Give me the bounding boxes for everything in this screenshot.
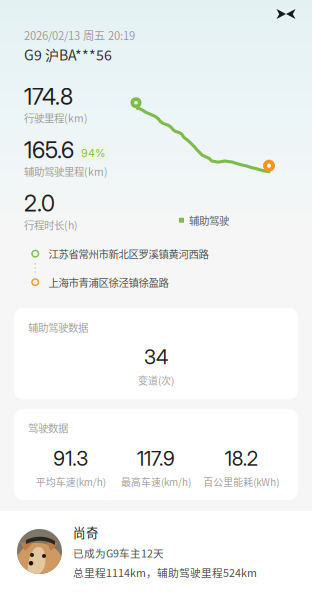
- staticText: 变道(次): [138, 373, 174, 387]
- button[interactable]: 尚奇: [0, 511, 312, 592]
- staticText: 辅助驾驶数据: [28, 320, 88, 335]
- staticText: 尚奇: [73, 523, 99, 541]
- staticText: 总里程1114km，辅助驾驶里程524km: [73, 565, 257, 580]
- staticText: 117.9: [137, 446, 175, 471]
- staticText: 辅助驾驶里程(km): [24, 164, 108, 179]
- staticText: 2.0: [24, 190, 55, 217]
- staticText: G9 沪BA***56: [24, 44, 112, 65]
- staticText: 18.2: [225, 446, 258, 471]
- staticText: 驾驶数据: [28, 420, 68, 435]
- button[interactable]: Close: [273, 5, 299, 23]
- staticText: 91.3: [53, 446, 88, 471]
- staticText: 行驶里程(km): [24, 110, 88, 125]
- staticText: 百公里能耗(kWh): [203, 475, 279, 489]
- staticText: 165.6: [24, 136, 74, 164]
- staticText: 最高车速(km/h): [121, 475, 191, 489]
- staticText: 2026/02/13 周五 20:19: [24, 27, 135, 43]
- staticText: 平均车速(km/h): [36, 475, 106, 489]
- staticText: 上海市青浦区徐泾镇徐盈路: [48, 275, 168, 290]
- staticText: 94%: [81, 147, 105, 160]
- staticText: 行程时长(h): [24, 217, 78, 232]
- staticText: 174.8: [24, 83, 73, 110]
- staticText: 已成为G9车主12天: [73, 545, 164, 560]
- staticText: 辅助驾驶: [189, 213, 229, 228]
- staticText: 江苏省常州市新北区罗溪镇黄河西路: [48, 246, 208, 261]
- staticText: 34: [144, 345, 168, 369]
